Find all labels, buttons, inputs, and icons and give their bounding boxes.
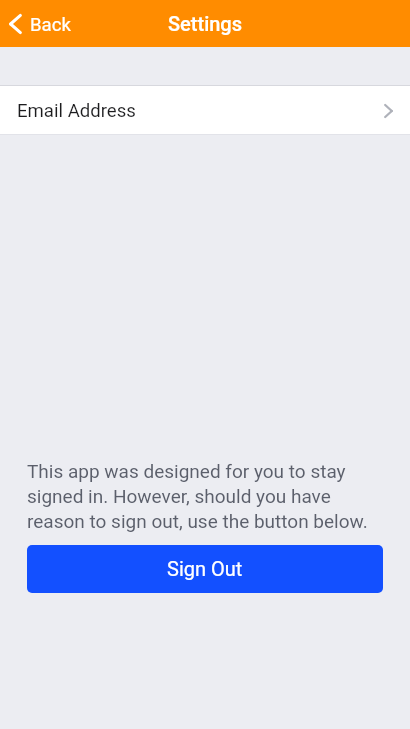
- staticText: Back: [30, 14, 71, 36]
- staticText: This app was designed for you to stay si…: [27, 460, 383, 532]
- staticText: Sign Out: [167, 557, 243, 580]
- button[interactable]: Back: [0, 5, 81, 42]
- staticText: Settings: [168, 12, 243, 35]
- button[interactable]: Email Address: [0, 86, 410, 134]
- other: Back: [9, 13, 22, 35]
- staticText: Email Address: [17, 100, 136, 122]
- button[interactable]: Sign Out: [27, 545, 383, 593]
